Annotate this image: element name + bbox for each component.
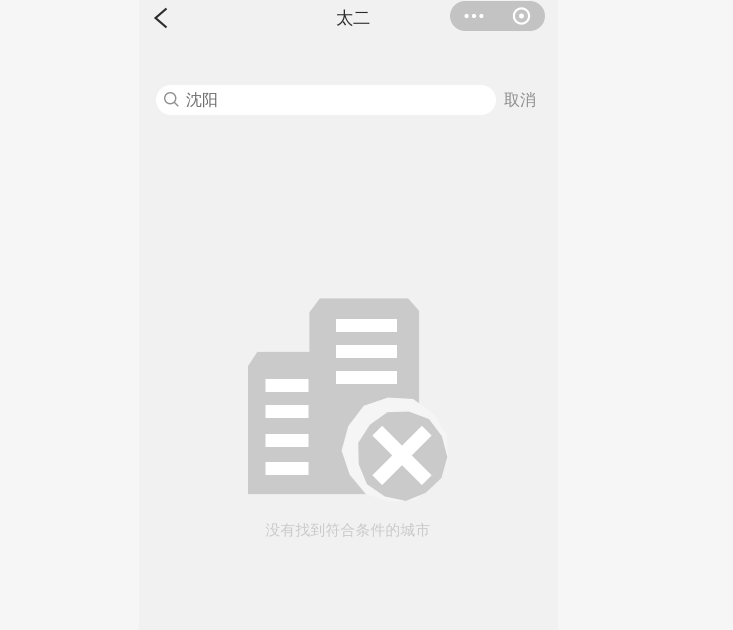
staticText: 沈阳 <box>186 90 218 110</box>
button[interactable]: Close mini program <box>498 1 545 31</box>
staticText: 太二 <box>336 7 370 29</box>
staticText: 取消 <box>504 90 536 110</box>
button[interactable]: Back <box>139 0 183 36</box>
staticText: 没有找到符合条件的城市 <box>265 521 430 539</box>
button[interactable]: 取消 <box>494 85 546 115</box>
button[interactable]: More <box>450 1 498 31</box>
